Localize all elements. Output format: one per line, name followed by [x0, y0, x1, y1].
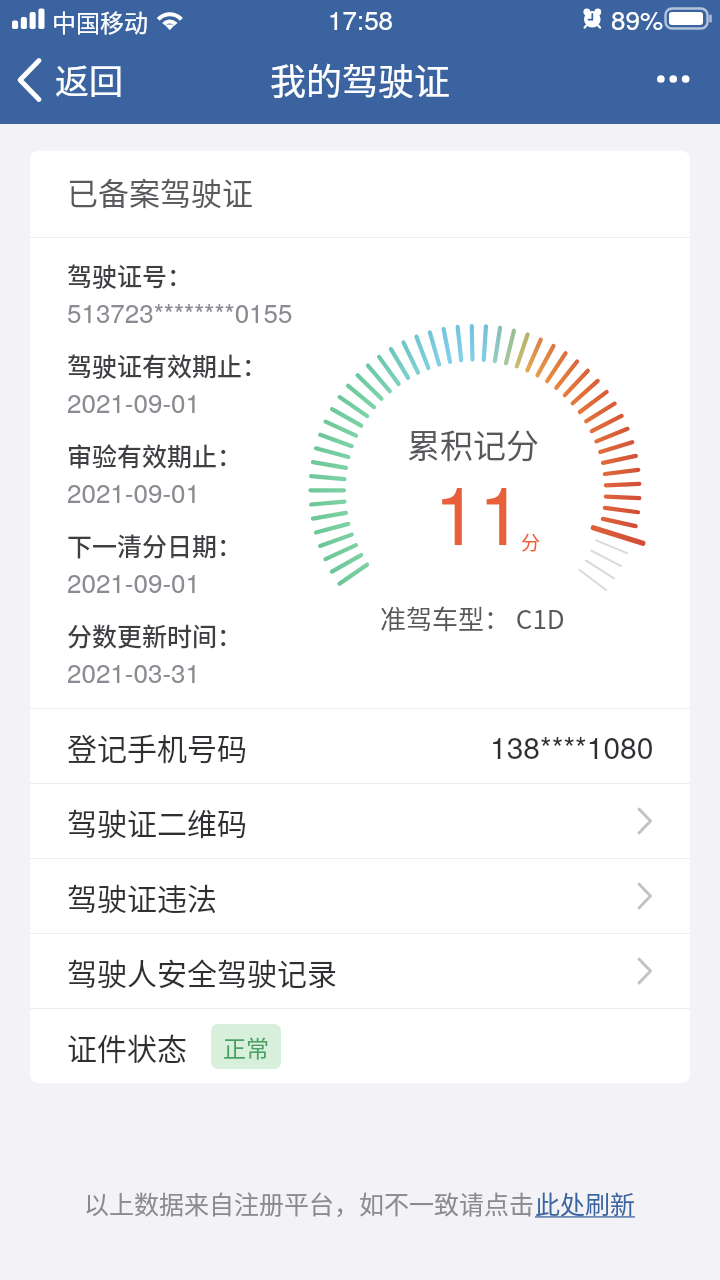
staticText: 驾驶证有效期止：: [67, 347, 268, 383]
button[interactable]: 驾驶人安全驾驶记录: [30, 934, 690, 1008]
staticText: 证件状态: [67, 1025, 187, 1068]
button[interactable]: More options: [635, 55, 720, 103]
staticText: 中国移动: [52, 4, 148, 39]
button[interactable]: 驾驶证违法: [30, 859, 690, 933]
button[interactable]: 此处刷新: [535, 1185, 636, 1221]
staticText: 2021-09-01: [67, 383, 200, 420]
button[interactable]: 登记手机号码: [30, 709, 690, 783]
staticText: 2021-03-31: [67, 653, 200, 690]
staticText: 分: [521, 528, 541, 556]
staticText: 89%: [611, 0, 664, 37]
staticText: 138****1080: [490, 725, 654, 768]
staticText: 累积记分: [407, 420, 539, 468]
staticText: 2021-09-01: [67, 473, 200, 510]
staticText: 此处刷新: [535, 1185, 636, 1221]
staticText: 17:58: [328, 0, 394, 37]
button[interactable]: 证件状态: [30, 1009, 690, 1083]
staticText: 驾驶证号：: [67, 257, 193, 293]
staticText: 2021-09-01: [67, 563, 200, 600]
staticText: 以上数据来自注册平台，如不一致请点击: [84, 1185, 535, 1221]
button[interactable]: 返回: [0, 47, 137, 112]
staticText: 返回: [55, 55, 123, 104]
staticText: 11: [434, 453, 523, 568]
staticText: 准驾车型： C1D: [380, 599, 565, 637]
staticText: 驾驶人安全驾驶记录: [67, 950, 337, 993]
staticText: 驾驶证二维码: [67, 800, 247, 843]
staticText: 登记手机号码: [67, 725, 247, 768]
staticText: 驾驶证违法: [67, 875, 217, 918]
staticText: 我的驾驶证: [270, 53, 451, 105]
staticText: 下一清分日期：: [67, 527, 243, 563]
staticText: 513723********0155: [67, 293, 293, 330]
staticText: 正常: [223, 1030, 269, 1063]
staticText: 分数更新时间：: [67, 617, 243, 653]
staticText: 审验有效期止：: [67, 437, 243, 473]
button[interactable]: 驾驶证二维码: [30, 784, 690, 858]
staticText: 已备案驾驶证: [67, 169, 253, 214]
